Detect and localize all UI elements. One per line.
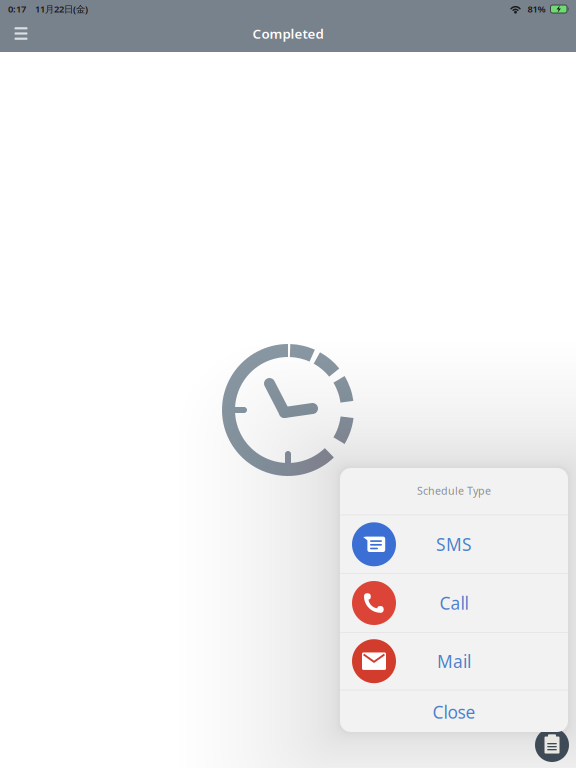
- staticText: 11月22日(金): [35, 3, 88, 15]
- staticText: Close: [432, 700, 475, 723]
- staticText: Call: [439, 591, 468, 614]
- button[interactable]: Menu: [0, 17, 42, 49]
- button[interactable]: SMS: [340, 515, 568, 573]
- button[interactable]: New schedule: [535, 728, 569, 762]
- button[interactable]: Call: [340, 574, 568, 632]
- staticText: Completed: [252, 25, 323, 42]
- button[interactable]: Mail: [340, 633, 568, 690]
- staticText: Mail: [437, 650, 471, 673]
- staticText: 81%: [527, 3, 545, 15]
- staticText: SMS: [436, 533, 472, 556]
- staticText: 0:17: [8, 3, 26, 15]
- button[interactable]: Close: [340, 690, 568, 733]
- staticText: Schedule Type: [417, 483, 491, 498]
